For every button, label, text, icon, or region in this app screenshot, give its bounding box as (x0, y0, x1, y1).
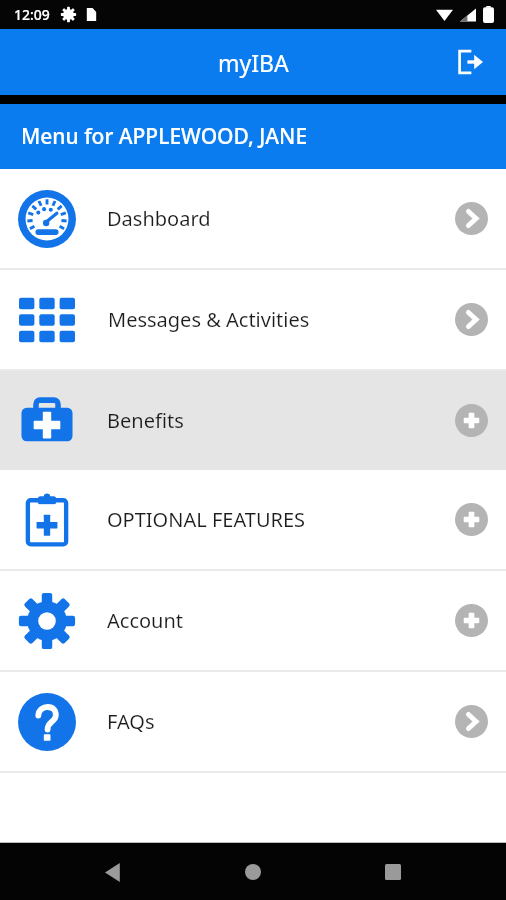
staticText: myIBA (218, 47, 289, 78)
button[interactable]: Back (88, 846, 140, 898)
button[interactable]: FAQs (0, 672, 506, 771)
button[interactable]: Recents (367, 846, 419, 898)
button[interactable]: Dashboard (0, 169, 506, 268)
button[interactable]: Log out (448, 40, 492, 84)
staticText: FAQs (107, 708, 155, 735)
staticText: OPTIONAL FEATURES (107, 506, 306, 533)
staticText: Menu for APPLEWOOD, JANE (21, 122, 308, 151)
staticText: 12:09 (14, 5, 50, 24)
button[interactable]: Benefits (0, 371, 506, 470)
staticText: Messages & Activities (108, 306, 310, 333)
button[interactable]: Home (227, 846, 279, 898)
staticText: Dashboard (107, 205, 211, 232)
staticText: Benefits (107, 407, 184, 434)
staticText: Account (107, 607, 184, 634)
button[interactable]: OPTIONAL FEATURES (0, 470, 506, 569)
button[interactable]: Account (0, 571, 506, 670)
button[interactable]: Messages & Activities (0, 270, 506, 369)
